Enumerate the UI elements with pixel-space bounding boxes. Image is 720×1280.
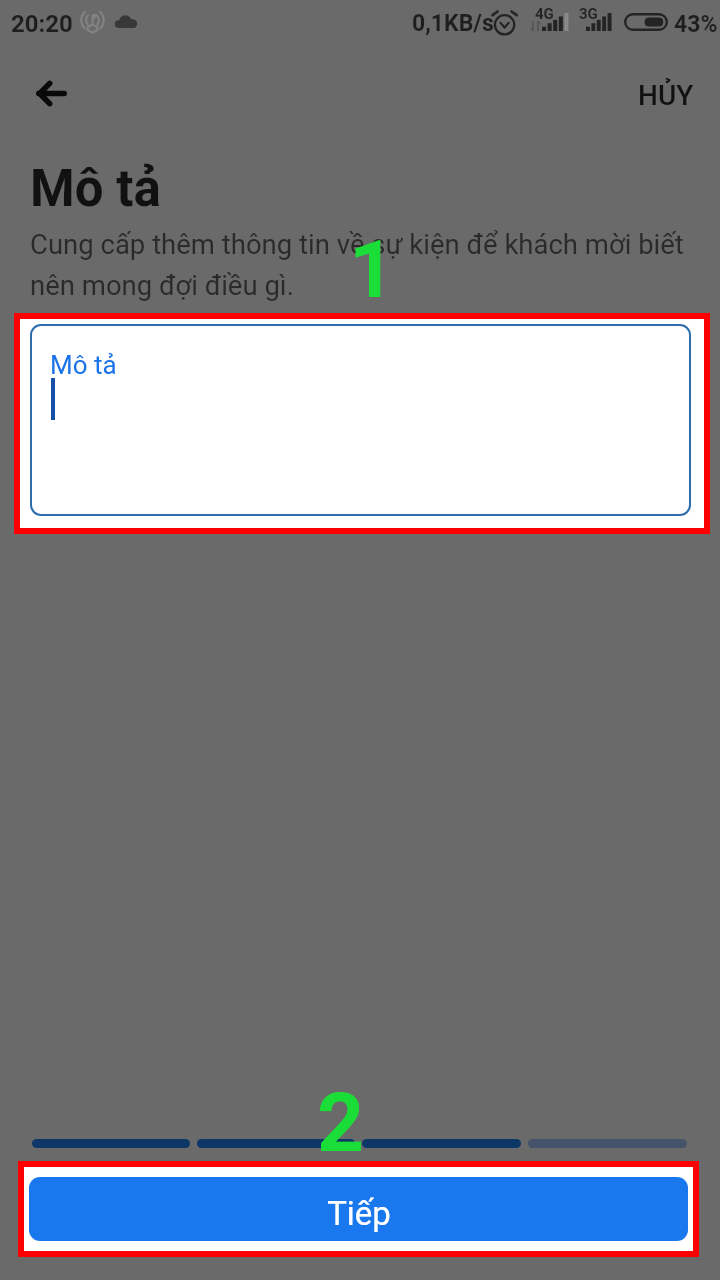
button[interactable]: Tiếp (29, 1177, 688, 1241)
staticText: 4G (535, 5, 554, 23)
staticText: HỦY (638, 79, 694, 112)
staticText: 43% (674, 11, 718, 38)
staticText: Mô tả (50, 350, 117, 380)
staticText: 0,1KB/s (412, 10, 494, 37)
button[interactable]: Mô tả (30, 324, 691, 516)
staticText: Tiếp (327, 1194, 391, 1233)
staticText: 3G (579, 5, 598, 23)
button[interactable]: HỦY (623, 63, 709, 127)
staticText: 2 (317, 1075, 365, 1171)
button[interactable]: Back (17, 58, 86, 127)
staticText: 1 (349, 223, 395, 317)
staticText: Cung cấp thêm thông tin về sự kiện để kh… (30, 228, 684, 302)
staticText: 20:20 (11, 10, 73, 38)
staticText: Mô tả (30, 159, 161, 219)
